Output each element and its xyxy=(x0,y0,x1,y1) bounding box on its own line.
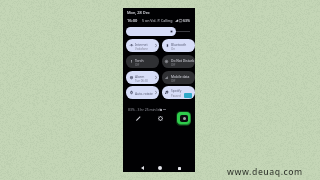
staticText: Off xyxy=(135,63,140,67)
staticText: Paused xyxy=(171,94,181,98)
button[interactable]: Internet xyxy=(126,39,159,52)
staticText: Mon, 28 Dec xyxy=(127,10,150,15)
staticText: Alarm xyxy=(135,74,145,78)
button[interactable]: Do Not Disturb xyxy=(162,55,195,68)
staticText: Torch xyxy=(135,58,144,62)
button[interactable]: Mobile data xyxy=(162,71,195,84)
button[interactable]: Alarm xyxy=(126,71,159,84)
staticText: 16:00 xyxy=(127,18,138,23)
button[interactable]: Media player xyxy=(162,86,195,99)
staticText: Bluetooth xyxy=(171,42,187,46)
button[interactable]: Power xyxy=(175,110,192,126)
staticText: Off xyxy=(171,79,176,83)
staticText: 63% xyxy=(183,18,191,23)
button[interactable]: Recent apps xyxy=(172,161,186,175)
staticText: Spotify xyxy=(171,89,182,93)
button[interactable]: Edit tiles xyxy=(133,113,143,123)
staticText: Internet xyxy=(135,42,148,46)
staticText: Tue 06:30 xyxy=(135,79,149,83)
button[interactable]: Brightness xyxy=(126,27,176,36)
button[interactable]: Home xyxy=(153,161,167,175)
staticText: Vodafone xyxy=(135,47,148,51)
staticText: 83% - 3 hr 25 min left xyxy=(128,107,162,112)
staticText: 5 on Vol. P. Calling xyxy=(142,18,173,23)
staticText: On xyxy=(171,47,176,51)
staticText: www.deuaq.com xyxy=(227,166,303,178)
button[interactable]: Settings xyxy=(155,113,165,123)
staticText: Auto-rotate xyxy=(135,91,153,95)
button[interactable]: Torch xyxy=(126,55,159,68)
staticText: Do Not Disturb xyxy=(171,58,195,62)
button[interactable]: Back xyxy=(135,161,149,175)
button[interactable]: Bluetooth xyxy=(162,39,195,52)
button[interactable]: Auto-rotate xyxy=(126,86,159,99)
staticText: Off xyxy=(171,63,176,67)
staticText: Mobile data xyxy=(171,74,190,78)
